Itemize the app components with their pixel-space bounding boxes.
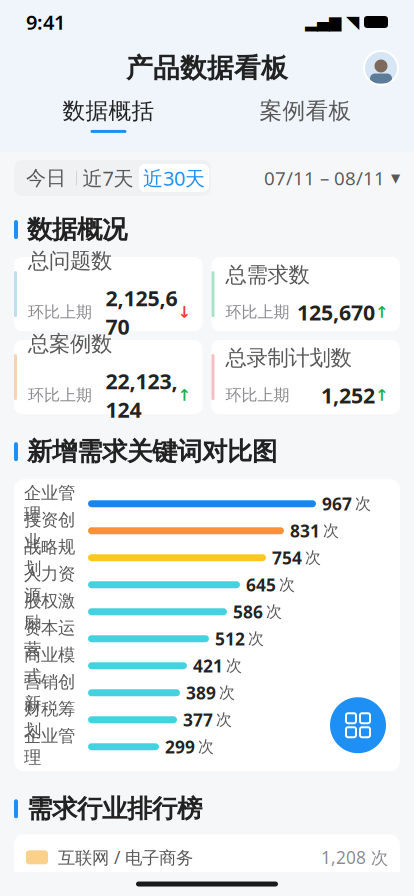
button[interactable]: 今日 [16, 163, 76, 193]
staticText: 967 [322, 492, 352, 515]
staticText: 1,208 次 [321, 846, 388, 869]
staticText: 战略规划 [24, 536, 75, 579]
staticText: 377 [183, 708, 213, 731]
staticText: 产品数据看板 [126, 52, 288, 84]
button[interactable]: 总需求数 [211, 257, 400, 331]
staticText: ◥ [346, 12, 359, 32]
staticText: 企业管理 [24, 482, 75, 525]
button[interactable]: 近30天 [139, 164, 209, 192]
staticText: 次 [219, 683, 235, 703]
staticText: 近30天 [143, 165, 205, 191]
staticText: ▼ [391, 171, 400, 185]
staticText: 次 [323, 521, 339, 541]
staticText: 环比上期 [225, 302, 289, 322]
staticText: 次 [198, 737, 214, 757]
staticText: 案例看板 [259, 97, 351, 125]
staticText: ↑ [375, 386, 388, 404]
staticText: 资本运营 [24, 617, 75, 660]
button[interactable]: 近7天 [77, 163, 139, 193]
staticText: 次 [355, 494, 371, 514]
staticText: 投资创业 [24, 509, 75, 552]
staticText: ↑ [375, 303, 388, 321]
staticText: 金融 / 投资 [58, 872, 142, 895]
staticText: 新增需求关键词对比图 [27, 436, 277, 467]
staticText: 数据概况 [27, 214, 127, 245]
staticText: 互联网 / 电子商务 [58, 846, 193, 869]
staticText: 次 [226, 656, 242, 676]
staticText: 754 [272, 546, 302, 569]
staticText: 421 [193, 654, 223, 677]
staticText: 299 [165, 735, 195, 758]
staticText: 次 [266, 602, 282, 622]
staticText: ↑ [177, 386, 190, 404]
button[interactable]: 更多功能 [330, 697, 386, 753]
staticText: 环比上期 [28, 385, 92, 405]
staticText: 次 [305, 548, 321, 568]
staticText: 总录制计划数 [225, 345, 351, 371]
staticText: 企业管理 [24, 725, 75, 768]
button[interactable]: 案例看板 [207, 93, 404, 137]
staticText: 07/11 – 08/11 [264, 166, 385, 190]
staticText: 营销创新 [24, 671, 75, 714]
staticText: 总案例数 [28, 331, 112, 357]
staticText: 近7天 [82, 165, 133, 191]
staticText: ▂▄▆ [305, 13, 341, 31]
button[interactable]: 总录制计划数 [211, 340, 400, 414]
staticText: 次 [216, 710, 232, 730]
staticText: 总问题数 [28, 248, 112, 274]
button[interactable]: 07/11 – 08/11 [264, 166, 400, 190]
staticText: 环比上期 [28, 302, 92, 322]
staticText: 财税筹划 [24, 698, 75, 741]
staticText: 586 [233, 600, 263, 623]
staticText: 股权激励 [24, 590, 75, 633]
staticText: 831 [290, 519, 320, 542]
staticText: 1,252 [321, 381, 375, 409]
staticText: 数据概括 [62, 97, 154, 125]
staticText: 需求行业排行榜 [27, 793, 202, 824]
staticText: 今日 [26, 166, 66, 190]
staticText: 商业模式 [24, 644, 75, 687]
staticText: 次 [248, 629, 264, 649]
staticText: 环比上期 [225, 385, 289, 405]
button[interactable]: 总问题数 [14, 257, 202, 331]
staticText: 645 [246, 573, 276, 596]
staticText: 22,123,124 [105, 367, 177, 424]
staticText: 389 [186, 681, 216, 704]
staticText: 人力资源 [24, 563, 75, 606]
staticText: 512 [215, 627, 245, 650]
staticText: 2,125,670 [105, 284, 177, 341]
button[interactable]: 数据概括 [10, 93, 207, 137]
staticText: ↓ [177, 303, 190, 321]
button[interactable]: 个人头像 [364, 51, 398, 85]
button[interactable]: 总案例数 [14, 340, 202, 414]
staticText: 总需求数 [225, 262, 309, 288]
staticText: 9:41 [26, 9, 65, 35]
staticText: 次 [279, 575, 295, 595]
staticText: 125,670 [297, 298, 375, 326]
